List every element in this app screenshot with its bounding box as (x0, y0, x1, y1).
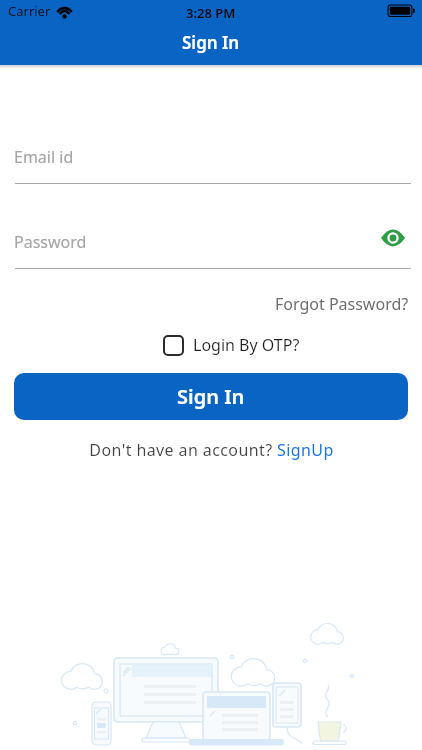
button[interactable]: Don't have an account? SignUp (89, 439, 334, 461)
staticText: Forgot Password? (275, 293, 409, 315)
staticText: Sign In (177, 383, 245, 410)
staticText: Login By OTP? (193, 334, 300, 356)
staticText: 3:28 PM (186, 4, 236, 22)
button[interactable] (377, 224, 409, 251)
staticText: Password (14, 231, 87, 253)
button[interactable]: Forgot Password? (275, 293, 422, 315)
staticText: Don't have an account? SignUp (89, 439, 334, 461)
staticText: Sign In (182, 31, 240, 54)
staticText: Email id (14, 146, 74, 168)
button[interactable]: Login By OTP? (20, 334, 422, 356)
button[interactable]: Sign In (14, 373, 408, 420)
staticText: Carrier (8, 2, 51, 20)
